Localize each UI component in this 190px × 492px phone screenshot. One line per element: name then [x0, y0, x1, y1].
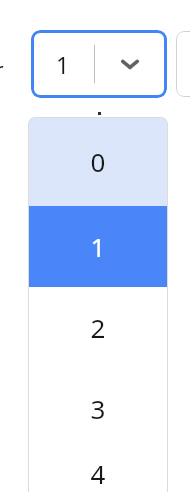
button[interactable]: 1	[31, 30, 167, 98]
staticText: 4	[28, 456, 168, 491]
button[interactable]: 3	[28, 368, 168, 449]
staticText: 2	[28, 310, 168, 345]
button[interactable]: 4	[28, 449, 168, 492]
button[interactable]: 1	[28, 206, 168, 287]
staticText: 3	[28, 391, 168, 426]
button[interactable]: Select	[176, 31, 190, 97]
staticText: 0	[28, 144, 168, 179]
staticText: 1	[28, 229, 168, 264]
button[interactable]: 2	[28, 287, 168, 368]
button[interactable]: 0	[28, 117, 168, 206]
staticText: r	[0, 56, 7, 82]
staticText: 1	[31, 49, 94, 80]
other: Open dropdown	[95, 30, 165, 98]
